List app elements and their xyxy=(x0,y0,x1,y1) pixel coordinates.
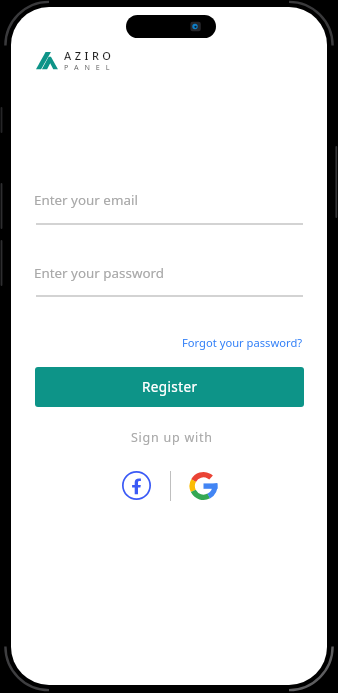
button[interactable]: Forgot your password? xyxy=(182,335,303,350)
staticText: Enter your email xyxy=(34,191,138,209)
button[interactable]: Sign up with Google xyxy=(189,472,218,500)
staticText: Forgot your password? xyxy=(182,335,303,350)
staticText: Enter your password xyxy=(34,264,165,282)
staticText: PANEL xyxy=(64,62,116,72)
button[interactable]: Enter your email xyxy=(34,191,304,225)
button[interactable]: Enter your password xyxy=(34,264,304,297)
button[interactable]: Sign up with Facebook xyxy=(122,471,151,500)
staticText: AZIRO xyxy=(64,48,115,63)
button[interactable]: Register xyxy=(35,367,304,407)
staticText: Sign up with xyxy=(131,429,213,446)
staticText: Register xyxy=(142,378,198,396)
